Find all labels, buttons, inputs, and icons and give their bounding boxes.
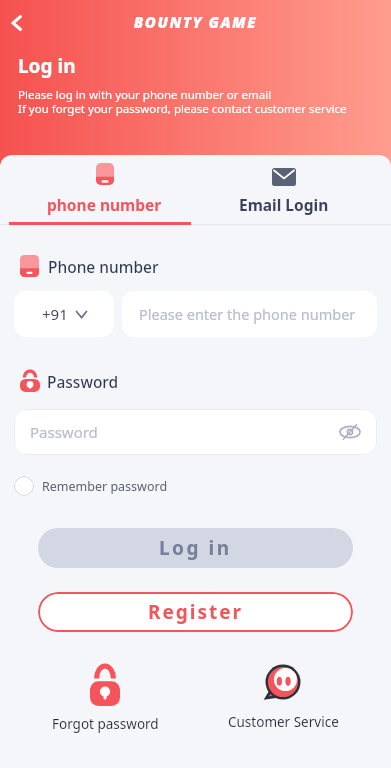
staticText: Register bbox=[148, 599, 244, 625]
staticText: Customer Service bbox=[228, 713, 339, 731]
button[interactable]: Customer Service bbox=[213, 663, 353, 731]
staticText: Please log in with your phone number or … bbox=[18, 87, 347, 116]
button[interactable]: Register bbox=[38, 592, 353, 632]
staticText: Phone number bbox=[48, 256, 159, 277]
button[interactable]: Remember password bbox=[14, 476, 168, 496]
button[interactable]: phone number bbox=[9, 163, 200, 215]
staticText: phone number bbox=[47, 194, 162, 215]
staticText: Forgot password bbox=[52, 715, 159, 733]
button[interactable]: Log in bbox=[38, 528, 353, 568]
staticText: Password bbox=[47, 371, 119, 392]
button[interactable]: +91 bbox=[14, 291, 114, 337]
staticText: +91 bbox=[42, 304, 68, 324]
staticText: Email Login bbox=[239, 194, 329, 215]
staticText: Log in bbox=[159, 535, 232, 561]
staticText: Log in bbox=[18, 53, 76, 79]
staticText: BOUNTY GAME bbox=[0, 12, 391, 32]
button[interactable]: Please enter the phone number bbox=[122, 291, 377, 337]
staticText: Please enter the phone number bbox=[139, 304, 356, 324]
staticText: Remember password bbox=[42, 478, 168, 495]
button[interactable]: Email Login bbox=[196, 163, 371, 215]
button[interactable]: Forgot password bbox=[35, 666, 175, 733]
button[interactable]: Password bbox=[14, 409, 377, 455]
staticText: Password bbox=[30, 422, 98, 442]
button[interactable] bbox=[0, 4, 40, 44]
